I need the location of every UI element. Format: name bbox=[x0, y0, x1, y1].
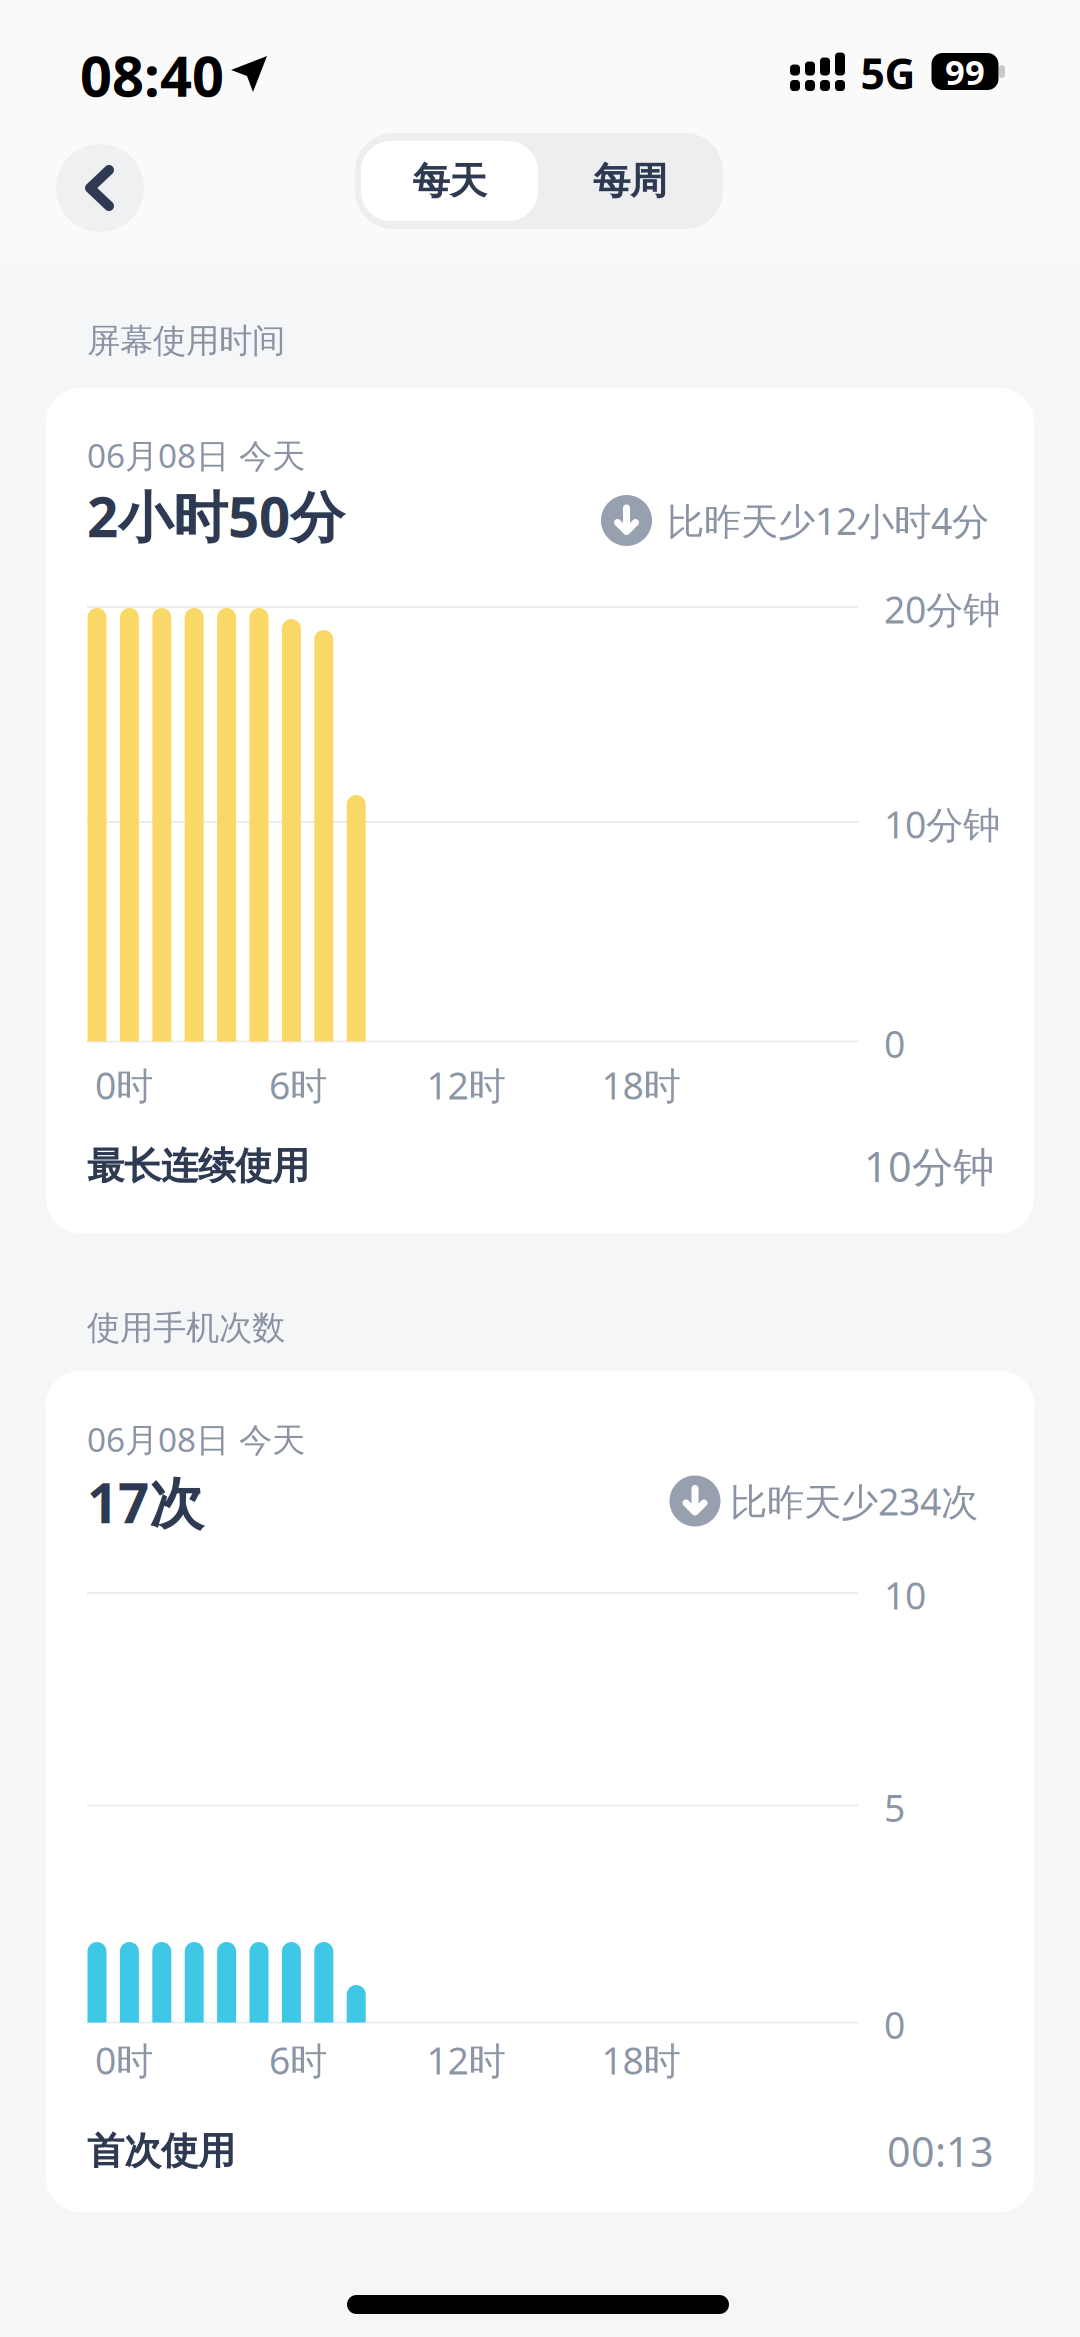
button[interactable]: 每天 bbox=[361, 141, 538, 221]
staticText: 18时 bbox=[601, 1060, 680, 1110]
staticText: 比昨天少234次 bbox=[730, 1476, 978, 1526]
staticText: 0 bbox=[884, 2000, 905, 2049]
staticText: 屏幕使用时间 bbox=[87, 320, 285, 361]
staticText: 18时 bbox=[601, 2035, 680, 2085]
staticText: 最长连续使用 bbox=[87, 1143, 309, 1189]
staticText: 08:40 bbox=[80, 38, 224, 112]
button[interactable]: 每周 bbox=[541, 141, 718, 221]
staticText: 5G bbox=[860, 45, 915, 101]
staticText: 6时 bbox=[269, 1060, 327, 1110]
staticText: 首次使用 bbox=[87, 2128, 235, 2174]
staticText: 00:13 bbox=[887, 2124, 994, 2178]
staticText: 2小时50分 bbox=[87, 480, 345, 552]
staticText: 12时 bbox=[426, 1060, 505, 1110]
staticText: 每周 bbox=[593, 158, 667, 204]
staticText: 10 bbox=[884, 1570, 926, 1620]
staticText: 每天 bbox=[412, 158, 486, 204]
staticText: 6时 bbox=[269, 2035, 327, 2085]
staticText: 99 bbox=[945, 48, 985, 94]
staticText: 10分钟 bbox=[864, 1139, 994, 1193]
staticText: 5 bbox=[884, 1783, 905, 1832]
staticText: 0 bbox=[884, 1019, 905, 1068]
staticText: 使用手机次数 bbox=[87, 1307, 285, 1348]
staticText: 12时 bbox=[426, 2035, 505, 2085]
staticText: 比昨天少12小时4分 bbox=[667, 496, 989, 545]
staticText: 10分钟 bbox=[884, 799, 1000, 849]
staticText: 0时 bbox=[95, 1060, 153, 1110]
staticText: 17次 bbox=[87, 1466, 204, 1538]
staticText: 06月08日 今天 bbox=[87, 433, 305, 477]
staticText: 06月08日 今天 bbox=[87, 1417, 305, 1461]
staticText: 20分钟 bbox=[884, 584, 1000, 634]
staticText: 0时 bbox=[95, 2035, 153, 2085]
button[interactable] bbox=[56, 144, 144, 232]
